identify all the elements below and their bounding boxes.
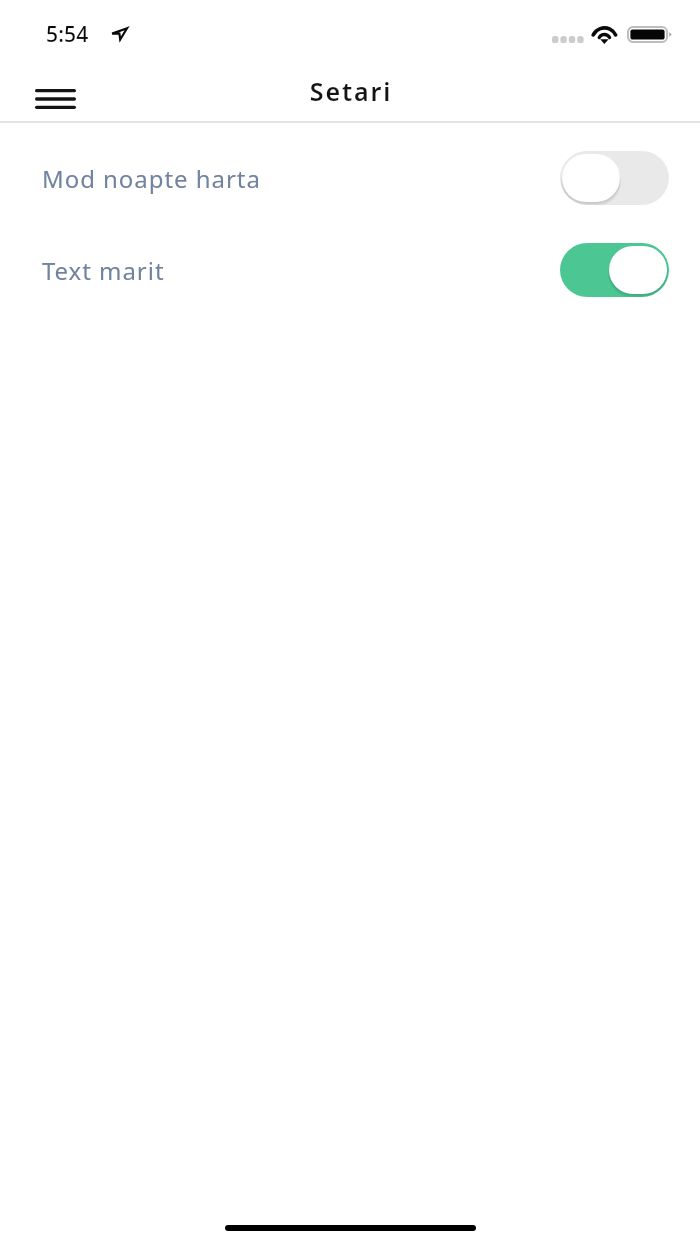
button[interactable]: Mod noapte harta, off [560, 151, 669, 205]
button[interactable]: Open navigation menu [16, 73, 94, 125]
button[interactable]: Mod noapte harta [0, 151, 700, 205]
staticText: 5:54 [46, 20, 89, 49]
staticText: Mod noapte harta [42, 162, 261, 195]
staticText: Setari [1, 74, 700, 108]
button[interactable]: Text marit [0, 243, 700, 297]
staticText: Text marit [42, 254, 165, 287]
button[interactable]: Text marit, on [560, 243, 669, 297]
